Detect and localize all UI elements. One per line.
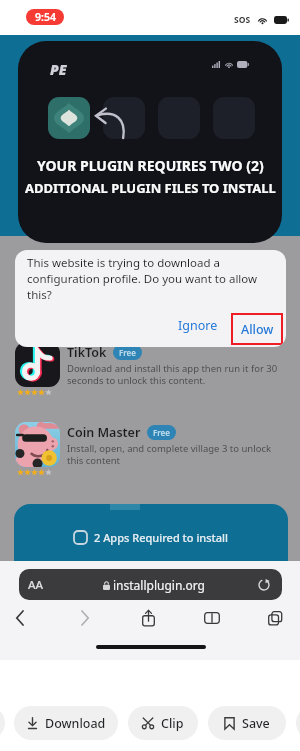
staticText: Coin Master: [67, 424, 141, 441]
button[interactable]: More actions: [296, 706, 300, 740]
staticText: 9:54: [35, 10, 56, 24]
button[interactable]: 2 Apps Required to install: [14, 504, 288, 561]
staticText: Free: [119, 347, 136, 358]
button[interactable]: Share: [135, 605, 161, 631]
button[interactable]: TikTok: [0, 342, 300, 404]
button[interactable]: Reload: [254, 575, 274, 595]
button[interactable]: Download: [14, 706, 118, 740]
staticText: Free: [153, 427, 170, 438]
button[interactable]: AA: [19, 569, 282, 600]
staticText: AA: [28, 577, 44, 593]
button[interactable]: Back: [7, 605, 33, 631]
staticText: Install, open, and complete village 3 to…: [67, 442, 279, 467]
staticText: ADDITIONAL PLUGIN FILES TO INSTALL: [25, 179, 276, 197]
staticText: installplugin.org: [113, 577, 205, 593]
button[interactable]: Ignore: [175, 312, 220, 338]
staticText: Save: [242, 715, 270, 732]
staticText: SOS: [234, 14, 251, 26]
button[interactable]: Allow: [231, 313, 283, 345]
staticText: TikTok: [67, 344, 107, 361]
staticText: Ignore: [178, 317, 218, 334]
button[interactable]: Save: [208, 706, 286, 740]
staticText: This website is trying to download a con…: [27, 255, 263, 303]
staticText: Download: [45, 715, 106, 732]
button[interactable]: Forward: [72, 605, 98, 631]
staticText: Allow: [241, 321, 274, 338]
button[interactable]: Clip: [128, 706, 198, 740]
button[interactable]: Coin Master: [0, 422, 300, 484]
button[interactable]: Tabs: [262, 605, 288, 631]
staticText: Clip: [161, 715, 184, 732]
staticText: 2 Apps Required to install: [94, 530, 229, 545]
staticText: Download and install this app then run i…: [67, 362, 279, 387]
staticText: PE: [50, 60, 67, 79]
button[interactable]: Bookmarks: [199, 605, 225, 631]
staticText: YOUR PLUGIN REQUIRES TWO (2): [37, 156, 264, 175]
button[interactable]: Previous action: [0, 706, 5, 740]
